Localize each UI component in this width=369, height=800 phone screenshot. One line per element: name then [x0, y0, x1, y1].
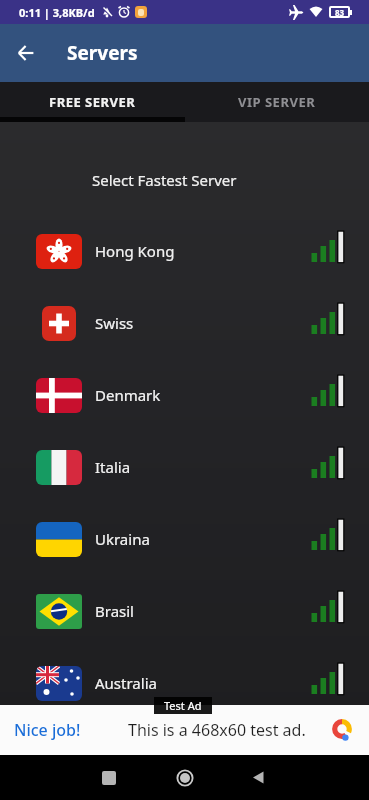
button[interactable] [176, 769, 194, 787]
button[interactable]: Hong Kong [0, 215, 369, 287]
staticText: Nice job! [14, 719, 81, 741]
button[interactable]: FREE SERVER [0, 82, 184, 122]
button[interactable]: Italia [0, 431, 369, 503]
button[interactable]: VIP SERVER [184, 82, 369, 122]
button[interactable]: Ukraina [0, 503, 369, 575]
staticText: FREE SERVER [49, 93, 136, 111]
button[interactable]: Nice job! [0, 705, 369, 755]
staticText: Servers [67, 40, 138, 66]
staticText: 83 [335, 7, 345, 18]
button[interactable] [6, 33, 46, 73]
staticText: Hong Kong [95, 241, 175, 261]
staticText: Denmark [95, 385, 161, 405]
staticText: Brasil [95, 601, 134, 621]
staticText: This is a 468x60 test ad. [128, 719, 306, 741]
button[interactable] [102, 771, 116, 785]
staticText: Select Fastest Server [92, 170, 237, 190]
button[interactable]: Denmark [0, 359, 369, 431]
button[interactable]: Brasil [0, 575, 369, 647]
staticText: 0:11 | 3,8KB/d [19, 5, 95, 20]
staticText: VIP SERVER [238, 93, 316, 111]
staticText: Ukraina [95, 529, 150, 549]
button[interactable] [252, 771, 265, 784]
staticText: Swiss [95, 313, 134, 333]
staticText: Italia [95, 457, 131, 477]
staticText: Test Ad [164, 698, 202, 713]
button[interactable]: Australia [0, 647, 369, 719]
staticText: Australia [95, 673, 157, 693]
button[interactable]: Swiss [0, 287, 369, 359]
